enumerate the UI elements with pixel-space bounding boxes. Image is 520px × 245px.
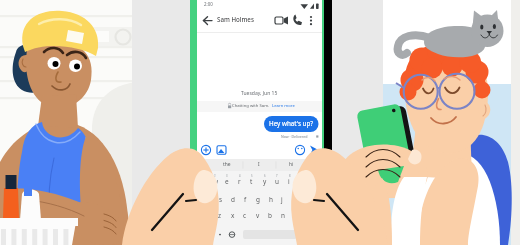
staticText: i — [288, 177, 290, 186]
staticText: 5 — [251, 174, 253, 178]
staticText: d — [231, 195, 235, 204]
staticText: k — [294, 195, 298, 204]
staticText: e — [225, 177, 229, 186]
staticText: 2 — [214, 174, 216, 178]
staticText: a — [206, 195, 210, 204]
staticText: 2:00 — [204, 1, 213, 7]
staticText: Sam Holmes — [217, 15, 254, 23]
staticText: 3 — [226, 174, 228, 178]
staticText: 4 — [239, 174, 241, 178]
staticText: Now · Delivered — [281, 134, 308, 139]
staticText: r — [238, 177, 241, 186]
staticText: Tuesday, Jun 15 — [241, 90, 278, 97]
staticText: c — [243, 211, 247, 220]
button[interactable]: Google Messages illustration — [0, 0, 520, 245]
staticText: 6 — [264, 174, 266, 178]
staticText: h — [269, 195, 273, 204]
staticText: Hey what's up? — [269, 119, 314, 128]
staticText: 7 — [276, 174, 278, 178]
staticText: y — [263, 177, 267, 186]
staticText: the — [223, 161, 231, 168]
staticText: hi — [289, 161, 294, 168]
staticText: w — [213, 177, 219, 186]
staticText: u — [275, 177, 279, 186]
staticText: f — [244, 195, 247, 204]
staticText: b — [268, 211, 272, 220]
staticText: Learn more — [272, 103, 295, 109]
staticText: x — [231, 211, 235, 220]
staticText: z — [218, 211, 222, 220]
staticText: l — [306, 195, 308, 204]
staticText: n — [281, 211, 285, 220]
staticText: p — [313, 177, 317, 186]
staticText: g — [256, 195, 260, 204]
staticText: Chatting with Sam. — [232, 103, 270, 109]
staticText: t — [250, 177, 253, 186]
staticText: j — [281, 195, 283, 204]
staticText: v — [256, 211, 260, 220]
staticText: s — [219, 195, 223, 204]
staticText: I — [258, 161, 260, 168]
staticText: 0 — [314, 174, 316, 178]
staticText: 8 — [289, 174, 291, 178]
